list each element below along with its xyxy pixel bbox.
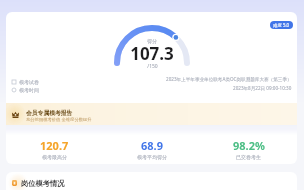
button[interactable]: 会员专属模考报告 xyxy=(6,103,297,125)
staticText: 68.9 xyxy=(141,138,163,153)
staticText: 模考最高分 xyxy=(42,154,67,160)
staticText: 得分 xyxy=(147,38,157,44)
staticText: 98.2% xyxy=(233,138,265,153)
staticText: /150 xyxy=(147,63,158,70)
staticText: 已交卷考生 xyxy=(236,154,261,160)
staticText: 会员专属模考报告 xyxy=(26,109,73,116)
staticText: 模考时间 xyxy=(19,87,39,93)
staticText: 模考平均得分 xyxy=(137,154,167,160)
button[interactable]: 难度 5.0 xyxy=(270,21,293,29)
staticText: 2023年8月22日 09:00-10:30 xyxy=(233,85,292,91)
staticText: 岗位模考情况 xyxy=(21,179,65,188)
staticText: 107.3 xyxy=(130,42,174,65)
staticText: 模考试卷 xyxy=(19,79,39,85)
staticText: 2023年上半年事业单位联考A类OC岗职测题库大赛（第三季） xyxy=(166,76,292,82)
staticText: 难度 5.0 xyxy=(273,22,290,28)
staticText: 120.7 xyxy=(40,138,69,153)
staticText: 充分挖掘模考价值 全维度分数提升 xyxy=(26,116,92,122)
